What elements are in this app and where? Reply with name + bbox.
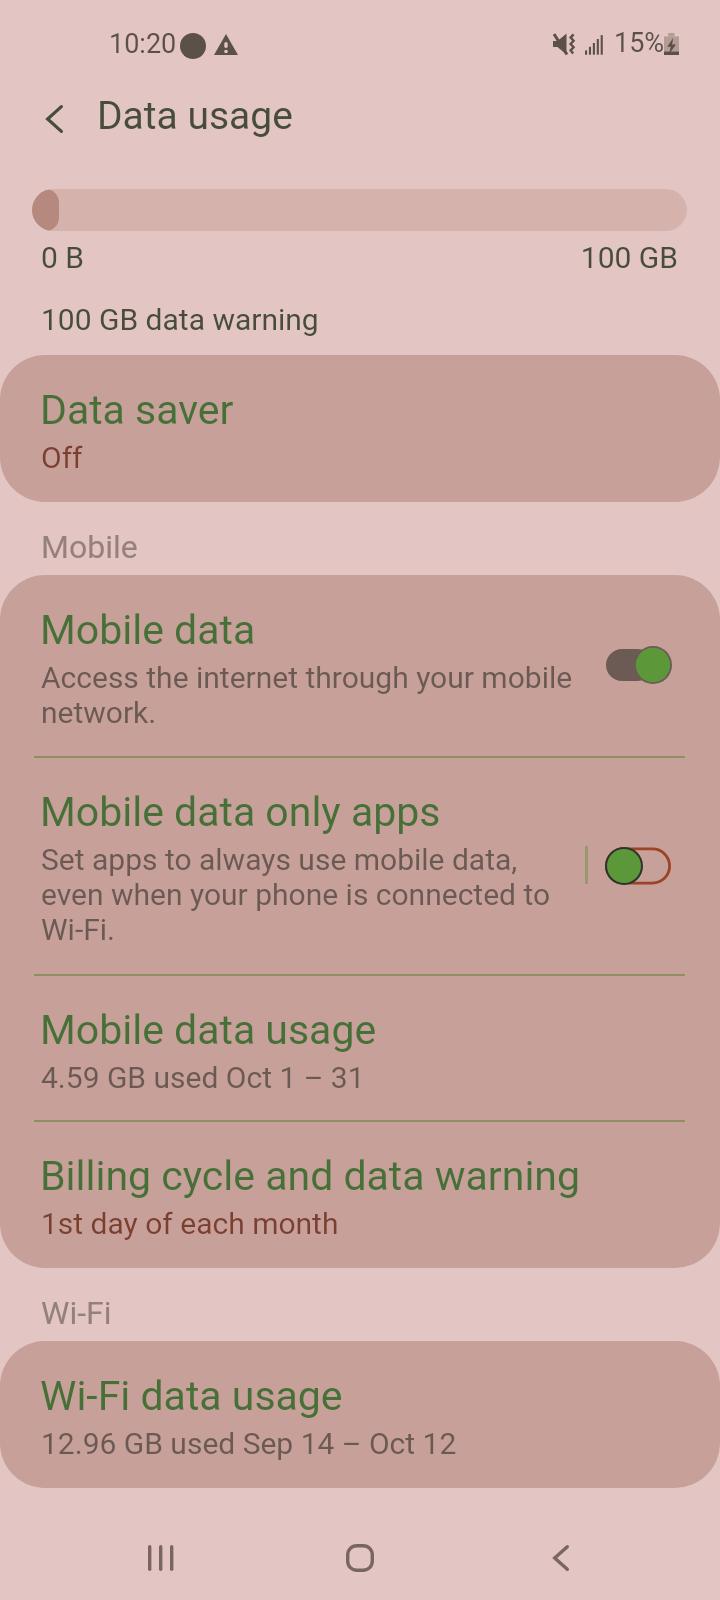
- button[interactable]: Switch off: [605, 846, 671, 886]
- button[interactable]: Recent apps: [120, 1530, 200, 1586]
- staticText: 4.59 GB used Oct 1 – 31: [41, 1060, 365, 1095]
- staticText: 1st day of each month: [41, 1206, 339, 1241]
- staticText: 12.96 GB used Sep 14 – Oct 12: [41, 1426, 457, 1461]
- staticText: Wi-Fi: [41, 1294, 112, 1332]
- button[interactable]: Switch on: [606, 645, 672, 685]
- staticText: Billing cycle and data warning: [40, 1152, 581, 1200]
- staticText: Mobile data: [40, 606, 256, 654]
- staticText: Data usage: [97, 93, 293, 139]
- button[interactable]: Data saver: [0, 355, 720, 502]
- staticText: Off: [41, 440, 83, 475]
- button[interactable]: Mobile data usage: [0, 975, 720, 1121]
- button[interactable]: Billing cycle and data warning: [0, 1121, 720, 1268]
- staticText: 0 B: [41, 240, 84, 275]
- staticText: Mobile: [41, 528, 138, 566]
- button[interactable]: Mobile data only apps: [0, 757, 720, 975]
- staticText: Access the internet through your mobile …: [41, 660, 587, 730]
- button[interactable]: Home: [320, 1530, 400, 1586]
- staticText: 100 GB data warning: [41, 302, 319, 337]
- staticText: 15%: [614, 27, 665, 59]
- staticText: Set apps to always use mobile data, even…: [41, 842, 563, 947]
- staticText: Data saver: [40, 386, 234, 434]
- button[interactable]: Navigate up: [18, 83, 90, 155]
- button[interactable]: Wi-Fi data usage: [0, 1341, 720, 1488]
- staticText: Wi-Fi data usage: [40, 1372, 343, 1420]
- button[interactable]: Back: [521, 1530, 601, 1586]
- staticText: 100 GB: [41, 240, 678, 275]
- staticText: 10:20: [109, 28, 177, 60]
- staticText: Mobile data usage: [40, 1006, 377, 1054]
- staticText: Mobile data only apps: [40, 788, 441, 836]
- button[interactable]: Mobile data: [0, 575, 720, 757]
